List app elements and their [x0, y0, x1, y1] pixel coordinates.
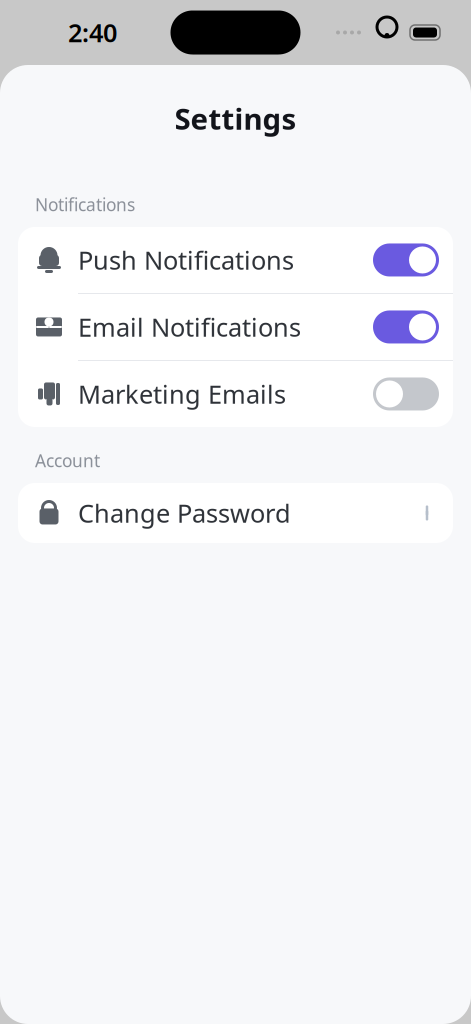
button[interactable]: Email Notifications [18, 294, 453, 360]
staticText: Marketing Emails [78, 377, 286, 411]
staticText: Push Notifications [78, 243, 294, 277]
staticText: Email Notifications [78, 310, 301, 344]
staticText: Account [35, 449, 100, 472]
staticText: Notifications [35, 193, 135, 216]
staticText: Settings [174, 99, 296, 138]
staticText: Change Password [78, 496, 291, 530]
button[interactable]: Marketing Emails [18, 361, 453, 427]
button[interactable]: Change Password [18, 483, 453, 543]
staticText: 2:40 [68, 16, 117, 49]
button[interactable]: Push Notifications [18, 227, 453, 293]
